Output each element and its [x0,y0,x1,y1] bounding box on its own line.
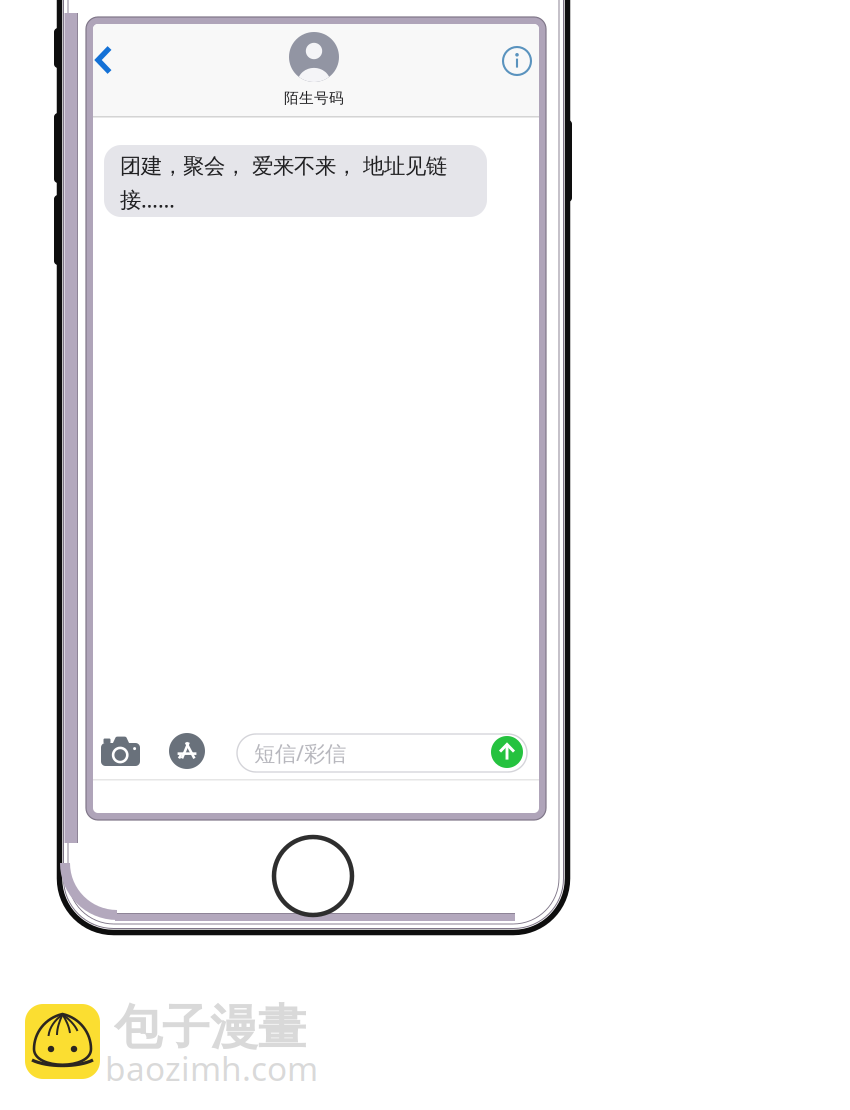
button[interactable]: Apps [165,730,209,772]
staticText: 短信/彩信 [254,739,346,767]
staticText: 陌生号码 [284,89,344,107]
staticText: 包子漫畫 [114,998,306,1057]
button[interactable]: 陌生号码 [244,32,384,107]
button[interactable]: Send [491,736,523,768]
button[interactable]: Details [494,38,540,84]
staticText: 接…… [120,185,175,213]
staticText: 团建，聚会， 爱来不来， 地址见链 [120,153,447,179]
button[interactable]: Back [82,34,126,86]
button[interactable]: Camera [97,730,144,772]
button[interactable]: 短信/彩信 [237,734,527,772]
staticText: baozimh.com [105,1046,318,1090]
